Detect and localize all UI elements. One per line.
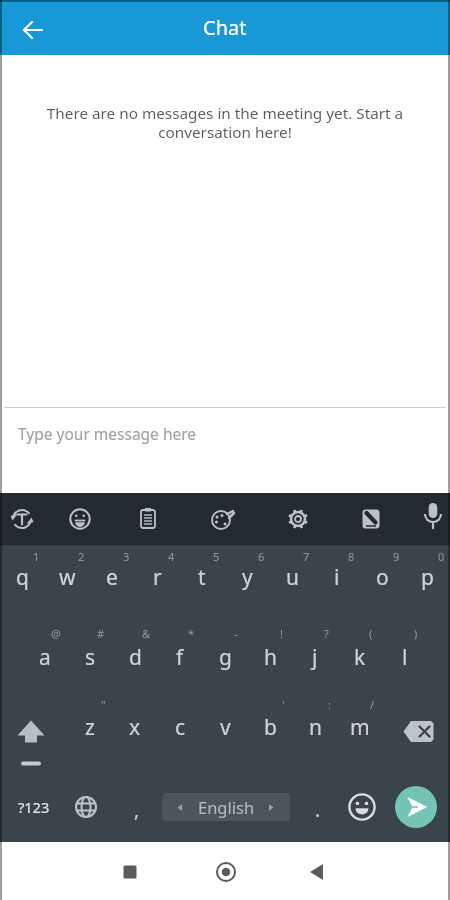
staticText: b <box>264 713 277 742</box>
button[interactable] <box>278 499 318 539</box>
staticText: x <box>129 713 141 742</box>
staticText: " <box>101 697 106 712</box>
button[interactable]: y <box>225 551 269 603</box>
button[interactable]: e <box>90 551 134 603</box>
staticText: 7 <box>303 549 310 564</box>
button[interactable] <box>202 499 242 539</box>
staticText: - <box>234 626 238 641</box>
button[interactable] <box>13 10 53 50</box>
staticText: n <box>309 713 322 742</box>
staticText: * <box>188 626 195 641</box>
button[interactable] <box>351 499 391 539</box>
staticText: 4 <box>168 549 175 564</box>
button[interactable] <box>390 705 446 757</box>
button[interactable]: ?123 <box>8 785 60 829</box>
button[interactable]: p <box>405 551 449 603</box>
staticText: English <box>198 796 255 818</box>
button[interactable]: h <box>248 631 292 683</box>
button[interactable]: j <box>293 631 337 683</box>
staticText: s <box>85 643 96 672</box>
staticText: v <box>220 713 231 742</box>
staticText: There are no messages in the meeting yet… <box>0 103 450 142</box>
staticText: # <box>97 626 105 641</box>
button[interactable]: Type your message here <box>0 408 450 493</box>
button[interactable] <box>392 783 440 831</box>
staticText: l <box>402 643 408 672</box>
button[interactable] <box>3 696 59 768</box>
button[interactable]: v <box>203 701 247 753</box>
staticText: z <box>85 713 95 742</box>
button[interactable] <box>128 499 168 539</box>
staticText: a <box>39 643 51 672</box>
button[interactable]: s <box>68 631 112 683</box>
staticText: k <box>354 643 366 672</box>
button[interactable]: o <box>360 551 404 603</box>
staticText: 6 <box>258 549 265 564</box>
button[interactable]: m <box>338 701 382 753</box>
button[interactable]: English <box>162 793 290 821</box>
staticText: Type your message here <box>18 423 197 444</box>
staticText: q <box>16 563 29 592</box>
staticText: , <box>134 797 140 823</box>
button[interactable]: z <box>68 701 112 753</box>
staticText: 8 <box>348 549 355 564</box>
button[interactable]: n <box>293 701 337 753</box>
staticText: / <box>370 697 375 712</box>
button[interactable]: u <box>270 551 314 603</box>
button[interactable]: t <box>180 551 224 603</box>
staticText: ! <box>280 626 283 641</box>
button[interactable]: c <box>158 701 202 753</box>
staticText: . <box>315 797 321 823</box>
button[interactable]: q <box>0 551 44 603</box>
staticText: c <box>175 713 186 742</box>
staticText: f <box>176 643 184 672</box>
button[interactable]: , <box>115 784 159 836</box>
staticText: u <box>286 563 299 592</box>
button[interactable] <box>2 499 42 539</box>
staticText: 2 <box>78 549 85 564</box>
staticText: 1 <box>33 549 40 564</box>
button[interactable] <box>204 850 248 894</box>
button[interactable] <box>340 785 384 829</box>
staticText: o <box>376 563 389 592</box>
staticText: r <box>153 563 162 592</box>
staticText: t <box>198 563 206 592</box>
button[interactable]: x <box>113 701 157 753</box>
staticText: 9 <box>393 549 400 564</box>
staticText: 0 <box>438 549 445 564</box>
staticText: 5 <box>213 549 220 564</box>
button[interactable]: f <box>158 631 202 683</box>
staticText: 3 <box>123 549 130 564</box>
button[interactable]: w <box>45 551 89 603</box>
button[interactable]: a <box>23 631 67 683</box>
button[interactable]: r <box>135 551 179 603</box>
button[interactable]: . <box>296 784 340 836</box>
button[interactable]: i <box>315 551 359 603</box>
staticText: ( <box>369 626 373 641</box>
button[interactable] <box>295 850 339 894</box>
button[interactable]: l <box>383 631 427 683</box>
staticText: : <box>328 697 331 712</box>
staticText: y <box>242 563 253 592</box>
button[interactable]: g <box>203 631 247 683</box>
button[interactable] <box>413 498 450 538</box>
staticText: e <box>106 563 118 592</box>
staticText: @ <box>51 626 61 641</box>
staticText: w <box>59 563 76 592</box>
staticText: ? <box>324 626 329 641</box>
staticText: j <box>312 643 318 672</box>
staticText: m <box>350 713 370 742</box>
button[interactable]: k <box>338 631 382 683</box>
staticText: & <box>142 626 151 641</box>
button[interactable]: d <box>113 631 157 683</box>
button[interactable]: b <box>248 701 292 753</box>
staticText: g <box>219 643 232 672</box>
staticText: p <box>421 563 434 592</box>
button[interactable] <box>64 785 108 829</box>
staticText: ' <box>282 697 285 712</box>
staticText: ) <box>414 626 418 641</box>
button[interactable] <box>60 499 100 539</box>
staticText: i <box>334 563 340 592</box>
staticText: Chat <box>203 14 247 41</box>
button[interactable] <box>108 850 152 894</box>
